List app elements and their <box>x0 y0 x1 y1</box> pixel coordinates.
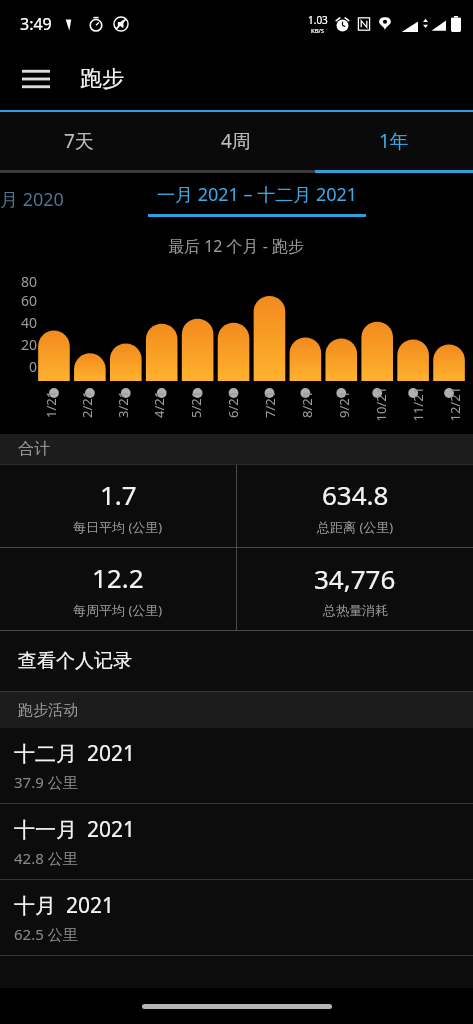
button[interactable]: 634.8 <box>237 465 473 547</box>
staticText: 4/21 <box>150 390 168 418</box>
staticText: 2021 <box>87 739 136 768</box>
staticText: 月 2020 <box>0 187 64 212</box>
staticText: 10/21 <box>371 386 389 421</box>
staticText: 12/21 <box>445 386 463 421</box>
staticText: 634.8 <box>322 477 389 512</box>
staticText: 每日平均 (公里) <box>73 518 163 536</box>
staticText: KB/S <box>311 27 325 35</box>
button[interactable]: 一月 2021 – 十二月 2021 <box>148 182 366 217</box>
staticText: 1年 <box>379 128 409 154</box>
button[interactable]: 1.7 <box>0 465 236 547</box>
button[interactable]: 1年 <box>315 112 473 170</box>
staticText: 11/21 <box>408 386 426 421</box>
staticText: 总热量消耗 <box>323 602 388 618</box>
staticText: 十二月 <box>14 741 77 767</box>
staticText: 8/21 <box>298 390 316 418</box>
staticText: 7/21 <box>261 390 279 418</box>
staticText: 十一月 <box>14 817 77 843</box>
staticText: 62.5 公里 <box>14 924 78 944</box>
staticText: 1.03 <box>308 13 328 27</box>
staticText: 1.7 <box>100 477 137 512</box>
staticText: 2/21 <box>78 390 96 418</box>
button[interactable]: 十月 <box>0 880 473 955</box>
staticText: 2021 <box>87 815 136 844</box>
staticText: 9/21 <box>335 390 353 418</box>
staticText: 1/21 <box>42 390 60 418</box>
staticText: 2021 <box>66 891 115 920</box>
staticText: 60 <box>21 291 38 310</box>
staticText: 5/21 <box>187 390 205 418</box>
staticText: 0 <box>29 357 38 376</box>
staticText: 80 <box>21 272 38 288</box>
staticText: 40 <box>21 313 38 332</box>
staticText: 12.2 <box>92 560 144 595</box>
staticText: 7天 <box>64 128 94 154</box>
button[interactable]: 7天 <box>0 112 157 170</box>
staticText: 4周 <box>221 128 251 154</box>
staticText: 跑步活动 <box>18 701 78 720</box>
staticText: 总距离 (公里) <box>317 518 394 536</box>
button[interactable]: 4周 <box>157 112 315 170</box>
button[interactable]: 34,776 <box>237 548 473 630</box>
staticText: 十月 <box>14 893 56 919</box>
staticText: 42.8 公里 <box>14 848 78 868</box>
button[interactable]: Menu <box>10 53 62 105</box>
button[interactable]: 查看个人记录 <box>0 631 473 691</box>
staticText: 最后 12 个月 - 跑步 <box>168 235 305 257</box>
staticText: 6/21 <box>224 390 242 418</box>
button[interactable]: 12.2 <box>0 548 236 630</box>
staticText: 查看个人记录 <box>18 649 132 673</box>
staticText: 每周平均 (公里) <box>73 601 163 619</box>
staticText: 37.9 公里 <box>14 772 78 792</box>
staticText: 3:49 <box>20 13 52 35</box>
staticText: 一月 2021 – 十二月 2021 <box>157 182 358 207</box>
staticText: 20 <box>21 335 38 354</box>
staticText: 合计 <box>18 439 50 459</box>
staticText: 3/21 <box>114 390 132 418</box>
button[interactable]: 十一月 <box>0 804 473 879</box>
button[interactable]: 十二月 <box>0 728 473 803</box>
staticText: 跑步 <box>80 65 124 93</box>
staticText: 34,776 <box>314 561 396 596</box>
